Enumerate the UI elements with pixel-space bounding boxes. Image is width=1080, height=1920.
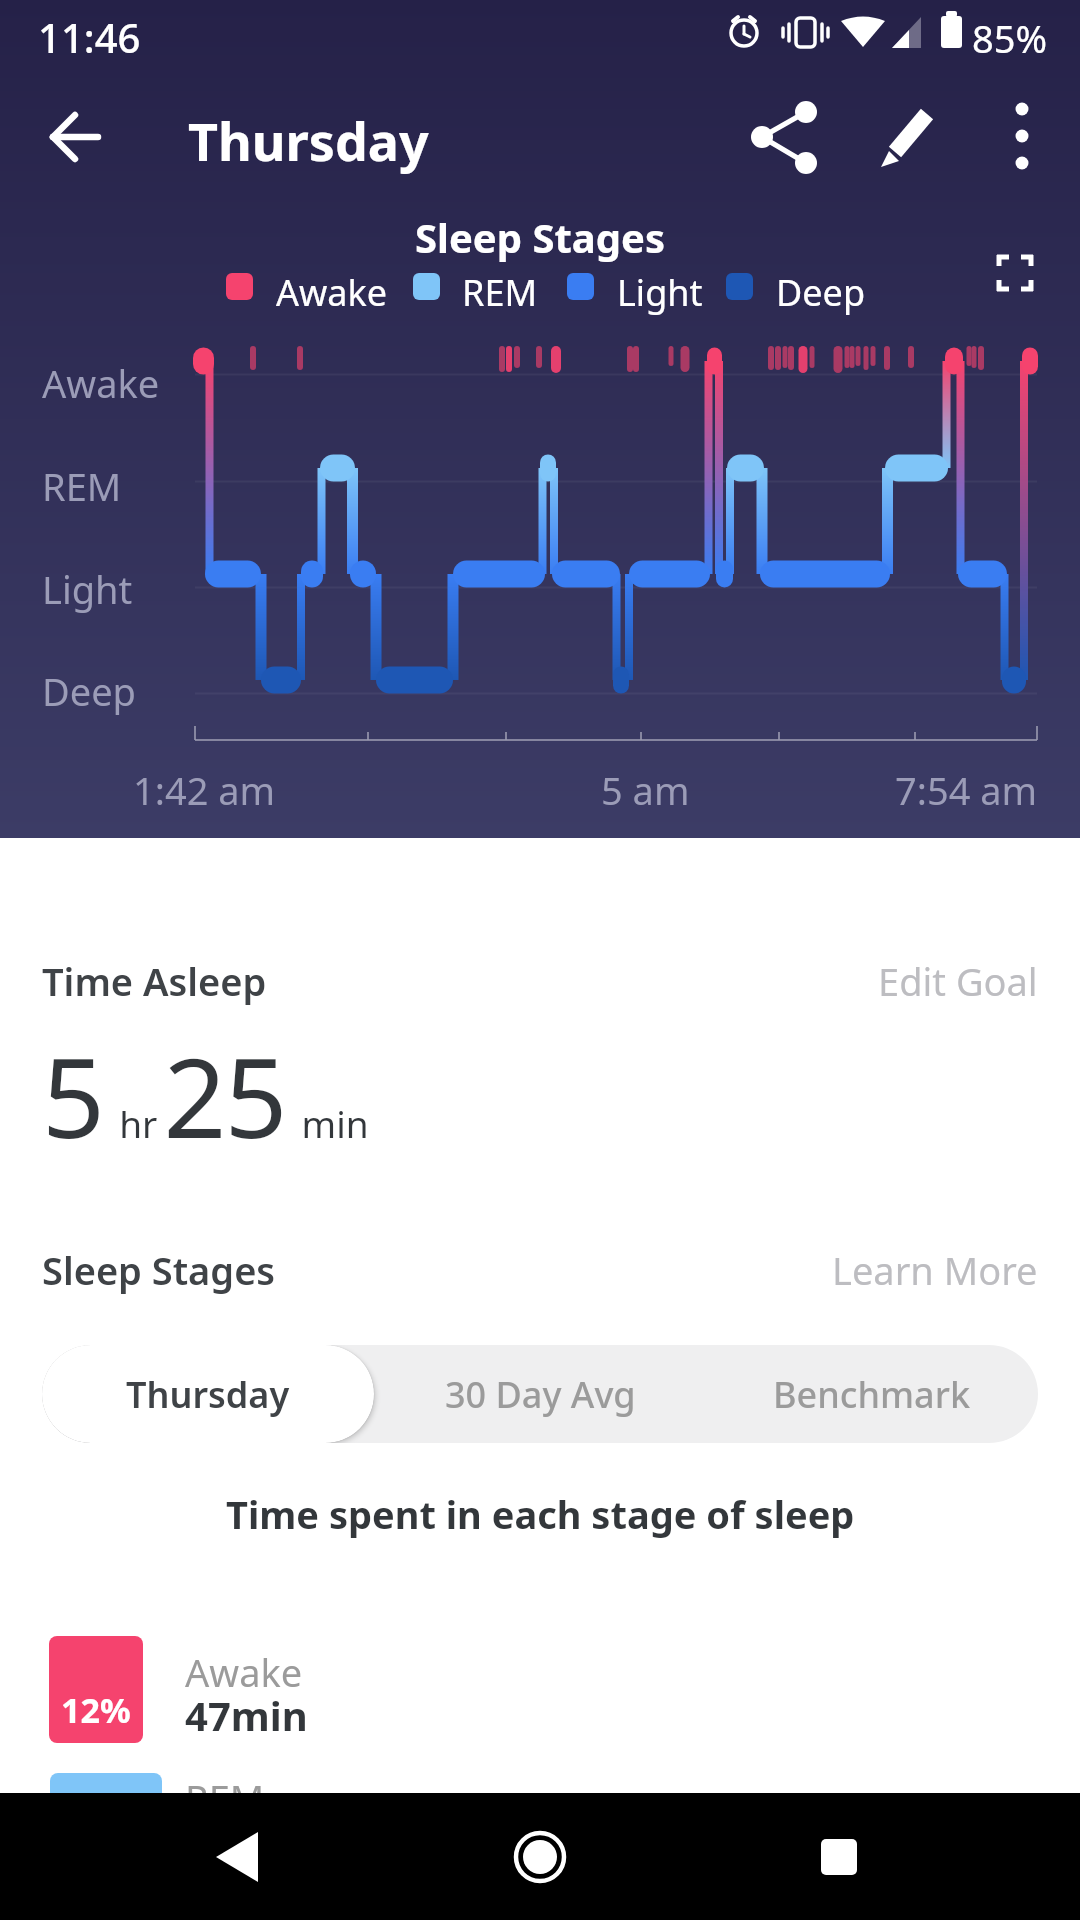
staticText: 30 Day Avg [445, 1370, 636, 1419]
staticText: Edit Goal [878, 955, 1038, 1007]
staticText: 5 am [601, 764, 690, 816]
staticText: 12% [61, 1687, 131, 1733]
staticText: 7:54 am [895, 764, 1038, 816]
staticText: Learn More [832, 1244, 1038, 1296]
button[interactable] [40, 105, 104, 169]
button[interactable] [990, 96, 1054, 160]
staticText: Awake [42, 357, 160, 409]
staticText: REM [462, 268, 538, 317]
button[interactable] [744, 96, 824, 176]
staticText: Thursday [188, 105, 429, 176]
staticText: Sleep Stages [415, 210, 665, 264]
staticText: Awake [276, 268, 388, 317]
button[interactable]: Benchmark [706, 1345, 1038, 1443]
staticText: 5 hr 25 min [42, 1020, 369, 1170]
staticText: Awake [185, 1646, 303, 1698]
button[interactable] [508, 1825, 572, 1889]
staticText: 11:46 [38, 10, 141, 64]
button[interactable] [807, 1825, 871, 1889]
button[interactable]: Thursday [42, 1345, 374, 1443]
button[interactable]: 12% [49, 1636, 143, 1743]
staticText: Benchmark [773, 1370, 971, 1419]
staticText: 85% [972, 12, 1048, 64]
staticText: REM [185, 1772, 265, 1824]
staticText: Thursday [126, 1370, 290, 1419]
staticText: 47min [185, 1688, 308, 1742]
button[interactable] [868, 96, 948, 176]
staticText: Deep [42, 665, 136, 717]
staticText: REM [42, 460, 122, 512]
button[interactable]: 30 Day Avg [374, 1345, 706, 1443]
staticText: Light [617, 268, 703, 317]
button[interactable] [985, 243, 1045, 303]
staticText: Sleep Stages [42, 1244, 276, 1296]
staticText: Light [42, 563, 133, 615]
staticText: 1:42 am [133, 764, 276, 816]
staticText: Time Asleep [42, 955, 267, 1007]
button[interactable]: Edit Goal [738, 955, 1038, 1007]
button[interactable]: Learn More [738, 1244, 1038, 1296]
staticText: Deep [776, 268, 866, 317]
button[interactable] [205, 1825, 269, 1889]
staticText: Time spent in each stage of sleep [226, 1488, 855, 1540]
